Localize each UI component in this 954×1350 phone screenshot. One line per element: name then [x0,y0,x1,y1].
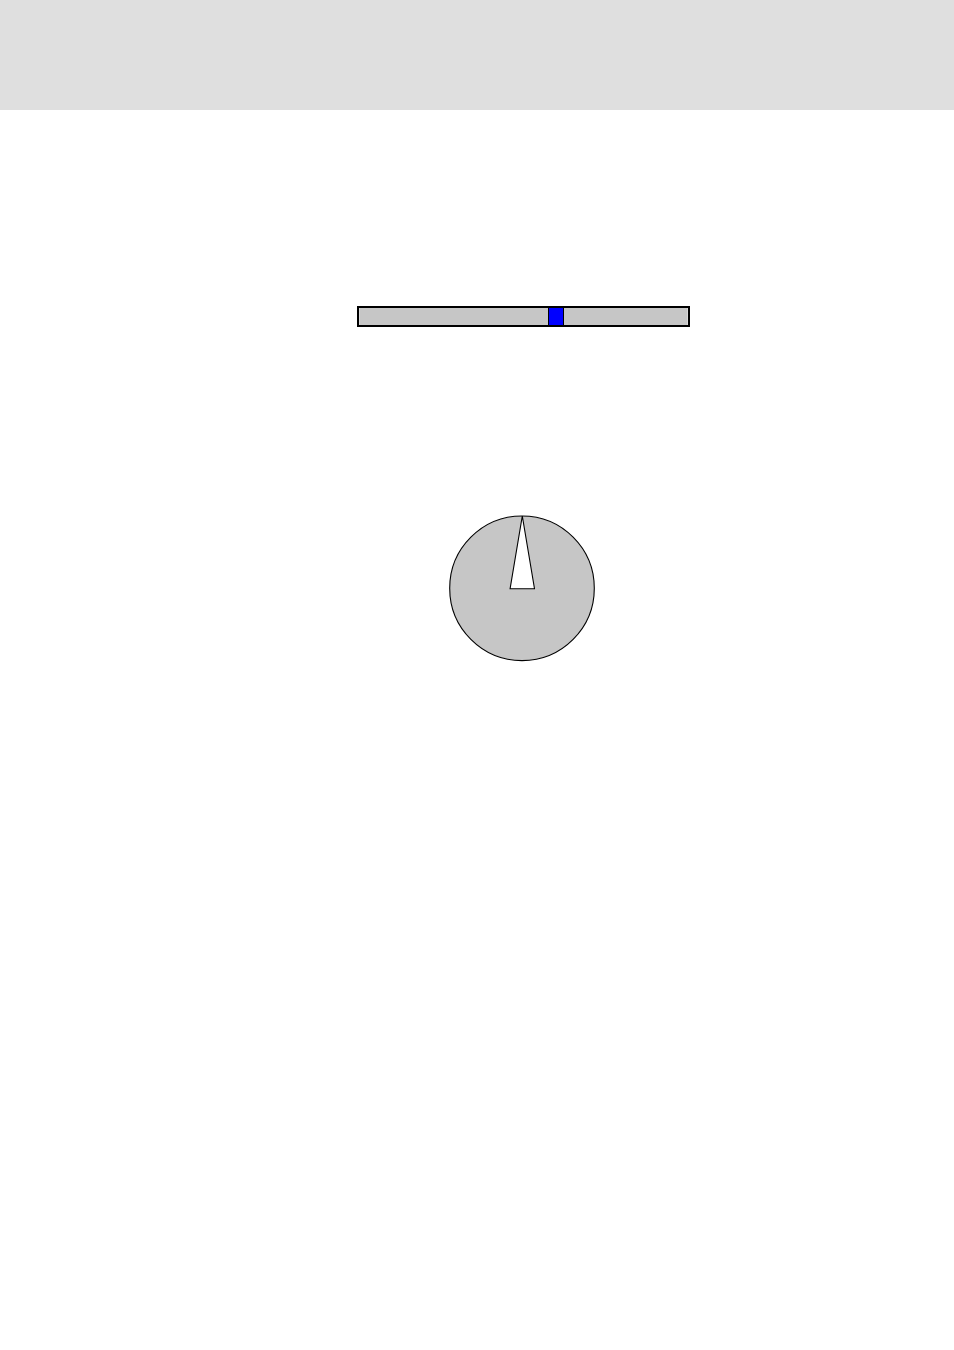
button[interactable]: Slider [357,306,690,327]
button[interactable]: Dial [445,512,599,664]
